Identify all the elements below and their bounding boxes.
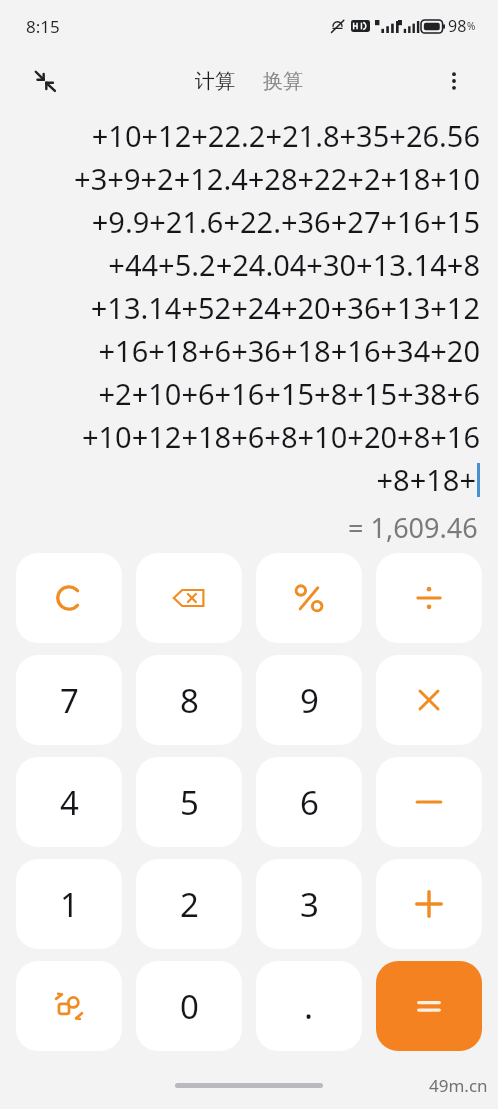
staticText: +10+12+22.2+21.8+35+26.56 (91, 116, 480, 155)
button[interactable]: 4 (16, 757, 122, 847)
staticText: 2 (180, 882, 199, 927)
button[interactable]: Backspace (136, 553, 242, 643)
staticText: +2+10+6+16+15+8+15+38+6 (98, 374, 480, 413)
staticText: 8 (180, 678, 199, 723)
staticText: 1 (60, 882, 79, 927)
staticText: 49m.cn (429, 1074, 488, 1097)
button[interactable]: . (256, 961, 362, 1051)
staticText: 8:15 (26, 15, 60, 38)
staticText: 6 (300, 780, 319, 825)
button[interactable]: 7 (16, 655, 122, 745)
button[interactable]: 5 (136, 757, 242, 847)
staticText: 9 (300, 678, 319, 723)
button[interactable]: Collapse (22, 58, 68, 104)
staticText: 换算 (263, 69, 303, 94)
staticText: % (467, 19, 476, 33)
button[interactable]: 2 (136, 859, 242, 949)
staticText: 计算 (195, 69, 235, 94)
staticText: +3+9+2+12.4+28+22+2+18+10 (74, 159, 480, 198)
staticText: 3 (300, 882, 319, 927)
button[interactable]: Percent (256, 553, 362, 643)
button[interactable]: Unit conversion (16, 961, 122, 1051)
button[interactable]: 换算 (257, 65, 309, 98)
button[interactable]: Minus (376, 757, 482, 847)
button[interactable]: 计算 (189, 65, 241, 98)
staticText: +9.9+21.6+22.+36+27+16+15 (91, 202, 480, 241)
button[interactable]: 9 (256, 655, 362, 745)
staticText: 7 (60, 678, 79, 723)
staticText: 0 (180, 984, 199, 1029)
button[interactable]: Divide (376, 553, 482, 643)
button[interactable]: 3 (256, 859, 362, 949)
button[interactable]: More options (432, 59, 476, 103)
staticText: +8+18+ (376, 460, 476, 499)
staticText: 5 (180, 780, 199, 825)
staticText: +10+12+18+6+8+10+20+8+16 (81, 417, 480, 456)
staticText: 4 (60, 780, 79, 825)
staticText: = 1,609.46 (348, 509, 478, 546)
staticText: 98 (448, 15, 467, 37)
staticText: +13.14+52+24+20+36+13+12 (90, 288, 480, 327)
button[interactable]: Equals (376, 961, 482, 1051)
button[interactable]: 8 (136, 655, 242, 745)
button[interactable]: 1 (16, 859, 122, 949)
button[interactable]: Multiply (376, 655, 482, 745)
button[interactable]: Plus (376, 859, 482, 949)
button[interactable]: 0 (136, 961, 242, 1051)
staticText: +16+18+6+36+18+16+34+20 (98, 331, 480, 370)
staticText: . (304, 983, 314, 1029)
button[interactable]: Clear (16, 553, 122, 643)
button[interactable]: 6 (256, 757, 362, 847)
staticText: +44+5.2+24.04+30+13.14+8 (108, 245, 480, 284)
